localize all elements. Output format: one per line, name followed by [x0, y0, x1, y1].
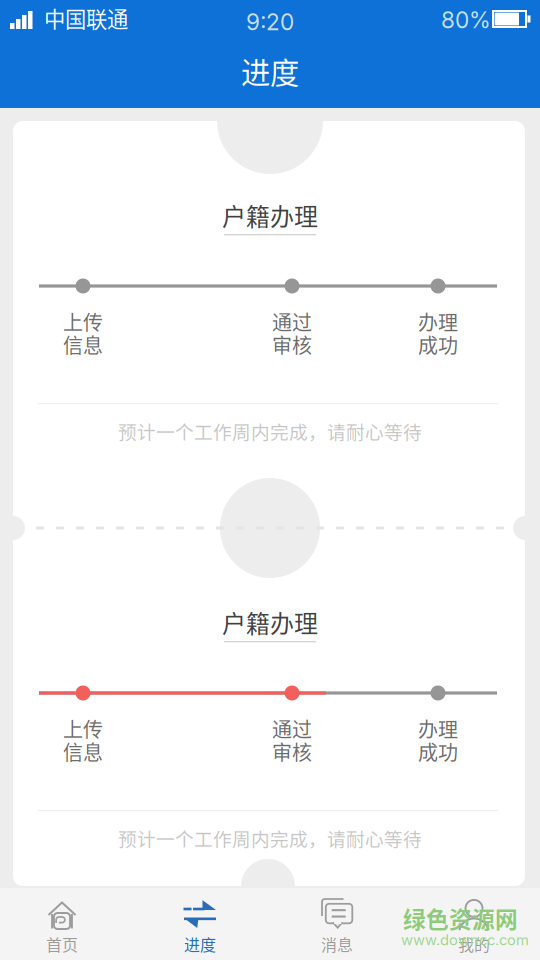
- staticText: 户籍办理: [222, 605, 318, 639]
- staticText: 预计一个工作周内完成，请耐心等待: [118, 824, 422, 851]
- staticText: 通过: [272, 714, 312, 743]
- staticText: 成功: [418, 737, 458, 766]
- staticText: 信息: [63, 330, 103, 359]
- button[interactable]: 首页: [0, 888, 129, 960]
- staticText: 消息: [321, 932, 353, 956]
- staticText: 我的: [458, 932, 490, 956]
- staticText: 进度: [184, 932, 216, 956]
- staticText: 上传: [63, 307, 103, 336]
- staticText: 中国联通: [44, 3, 128, 33]
- staticText: 信息: [63, 737, 103, 766]
- staticText: www.downcc.com: [401, 931, 529, 949]
- staticText: 办理: [418, 714, 458, 743]
- staticText: 9:20: [246, 8, 294, 36]
- staticText: 预计一个工作周内完成，请耐心等待: [118, 417, 422, 444]
- button[interactable]: 进度: [132, 888, 267, 960]
- staticText: 审核: [272, 330, 312, 359]
- staticText: 办理: [418, 307, 458, 336]
- staticText: 审核: [272, 737, 312, 766]
- staticText: 绿色资源网: [403, 902, 518, 934]
- staticText: 上传: [63, 714, 103, 743]
- staticText: 户籍办理: [222, 198, 318, 232]
- staticText: 成功: [418, 330, 458, 359]
- button[interactable]: 我的: [406, 888, 540, 960]
- staticText: 80%: [441, 6, 491, 34]
- staticText: 通过: [272, 307, 312, 336]
- staticText: 进度: [241, 50, 299, 92]
- button[interactable]: 消息: [269, 888, 404, 960]
- staticText: 首页: [46, 932, 78, 956]
